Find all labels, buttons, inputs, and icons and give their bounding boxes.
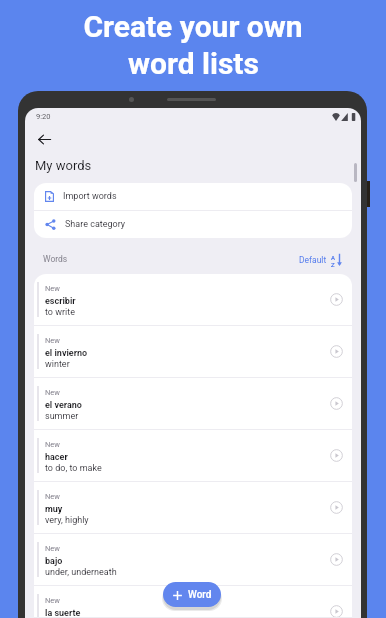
staticText: muy <box>45 504 63 515</box>
button[interactable]: Back <box>32 127 57 152</box>
staticText: Z <box>331 261 335 267</box>
staticText: Create your own <box>83 9 303 44</box>
button[interactable]: New <box>34 430 352 482</box>
staticText: el invierno <box>45 348 88 359</box>
staticText: Default <box>299 255 327 265</box>
staticText: very, highly <box>45 515 89 526</box>
button[interactable]: New <box>34 274 352 326</box>
staticText: New <box>45 596 60 605</box>
staticText: New <box>45 388 60 397</box>
button[interactable]: Word <box>163 582 221 607</box>
staticText: summer <box>45 411 79 422</box>
button[interactable]: Default <box>299 253 341 266</box>
staticText: hacer <box>45 452 68 463</box>
staticText: winter <box>45 359 70 370</box>
button[interactable]: New <box>34 378 352 430</box>
button[interactable]: Share category <box>34 211 352 238</box>
staticText: word lists <box>128 46 259 81</box>
button[interactable]: New <box>34 326 352 378</box>
staticText: New <box>45 492 60 501</box>
button[interactable]: New <box>34 586 352 618</box>
staticText: A <box>331 254 336 261</box>
staticText: Word <box>188 589 212 601</box>
staticText: New <box>45 440 60 449</box>
staticText: New <box>45 336 60 345</box>
staticText: My words <box>35 158 92 173</box>
staticText: la suerte <box>45 608 81 618</box>
staticText: New <box>45 544 60 553</box>
staticText: escribir <box>45 296 76 307</box>
staticText: Share category <box>65 219 126 230</box>
staticText: 9:20 <box>36 112 51 121</box>
staticText: bajo <box>45 556 63 567</box>
staticText: New <box>45 284 60 293</box>
staticText: Words <box>43 254 68 264</box>
staticText: el verano <box>45 400 82 411</box>
staticText: under, underneath <box>45 567 117 578</box>
staticText: to do, to make <box>45 463 102 474</box>
button[interactable]: New <box>34 482 352 534</box>
staticText: to write <box>45 307 75 318</box>
button[interactable]: New <box>34 534 352 586</box>
staticText: Import words <box>63 191 117 202</box>
button[interactable]: Import words <box>34 183 352 210</box>
